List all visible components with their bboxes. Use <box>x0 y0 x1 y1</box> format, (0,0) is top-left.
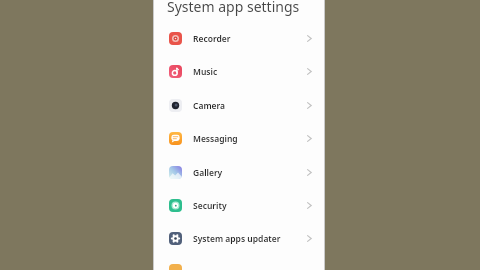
button[interactable]: Gallery <box>153 156 325 189</box>
button[interactable]: Messaging <box>153 122 325 155</box>
staticText: System app settings <box>167 0 300 16</box>
staticText: System apps updater <box>193 233 281 245</box>
button[interactable]: Recorder <box>153 22 325 55</box>
staticText: Camera <box>193 100 226 112</box>
staticText: Music <box>193 66 218 78</box>
button[interactable]: System apps updater <box>153 222 325 255</box>
button[interactable]: Security <box>153 189 325 222</box>
staticText: Recorder <box>193 33 231 45</box>
staticText: Messaging <box>193 133 238 145</box>
staticText: Security <box>193 200 227 212</box>
button[interactable]: Music <box>153 55 325 88</box>
staticText: Gallery <box>193 167 223 179</box>
button[interactable]: Camera <box>153 89 325 122</box>
